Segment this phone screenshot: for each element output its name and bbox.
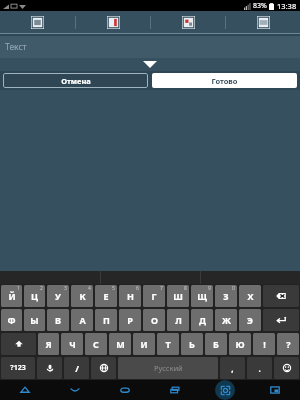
button[interactable]: Full keyboard (226, 11, 300, 33)
staticText: Г (151, 290, 157, 302)
button[interactable]: Split view (76, 11, 150, 33)
button[interactable]: Screenshot (215, 380, 235, 400)
button[interactable]: Emoji (274, 357, 299, 379)
staticText: О (151, 314, 158, 326)
button[interactable]: Б (205, 333, 227, 355)
button[interactable]: Т (157, 333, 179, 355)
button[interactable]: Ь (181, 333, 203, 355)
staticText: Х (247, 290, 254, 302)
button[interactable]: Ы (24, 309, 45, 331)
button[interactable]: Ш (167, 285, 189, 307)
staticText: ?123 (10, 363, 26, 373)
button[interactable]: Г (143, 285, 165, 307)
staticText: Т (165, 338, 171, 350)
staticText: Е (103, 290, 109, 302)
button[interactable]: Ц (24, 285, 45, 307)
staticText: И (140, 338, 148, 350)
button[interactable]: Keyboard layout (0, 11, 75, 33)
staticText: Б (213, 338, 219, 350)
button[interactable]: Й (1, 285, 22, 307)
staticText: 7 (160, 285, 163, 292)
staticText: Ы (30, 314, 39, 326)
button[interactable]: Change language (91, 357, 116, 379)
button[interactable]: / (64, 357, 89, 379)
button[interactable]: ?123 (1, 357, 35, 379)
button[interactable]: Русский (118, 357, 218, 379)
staticText: А (79, 314, 86, 326)
staticText: У (55, 290, 61, 302)
button[interactable]: У (47, 285, 69, 307)
button[interactable]: Х (239, 285, 261, 307)
staticText: Н (127, 290, 134, 302)
button[interactable]: Текст (0, 36, 300, 58)
staticText: Русский (154, 363, 183, 373)
button[interactable]: Л (167, 309, 189, 331)
button[interactable]: Отмена (3, 73, 148, 88)
button[interactable]: Home (100, 380, 150, 400)
button[interactable]: И (133, 333, 155, 355)
staticText: 2 (40, 285, 43, 292)
staticText: Ю (235, 338, 245, 350)
staticText: Отмена (61, 76, 91, 86)
staticText: Д (199, 314, 206, 326)
staticText: В (55, 314, 61, 326)
button[interactable]: М (109, 333, 131, 355)
staticText: 0 (232, 285, 235, 292)
staticText: 13:38 (277, 1, 297, 11)
button[interactable]: Э (239, 309, 261, 331)
button[interactable]: Е (95, 285, 117, 307)
staticText: ? (286, 338, 291, 350)
staticText: Ж (222, 314, 231, 326)
button[interactable]: ! (253, 333, 275, 355)
button[interactable]: Ж (215, 309, 237, 331)
button[interactable]: С (85, 333, 107, 355)
button[interactable]: Ч (61, 333, 83, 355)
staticText: Э (247, 314, 253, 326)
staticText: Текст (5, 41, 27, 53)
button[interactable]: , (220, 357, 245, 379)
button[interactable]: Image input (151, 11, 225, 33)
button[interactable]: Multi window (250, 380, 300, 400)
staticText: / (75, 362, 79, 374)
button[interactable]: Recent apps (150, 380, 200, 400)
button[interactable]: . (247, 357, 272, 379)
staticText: Ь (189, 338, 195, 350)
button[interactable]: О (143, 309, 165, 331)
staticText: 1 (17, 285, 20, 292)
button[interactable]: Voice input (37, 357, 62, 379)
button[interactable]: Back (0, 380, 50, 400)
staticText: К (79, 290, 86, 302)
button[interactable]: Enter (263, 309, 299, 331)
staticText: Ф (7, 314, 16, 326)
staticText: 4 (88, 285, 91, 292)
staticText: Ц (31, 290, 38, 302)
button[interactable]: Ю (229, 333, 251, 355)
button[interactable]: П (95, 309, 117, 331)
staticText: , (231, 363, 234, 374)
button[interactable]: В (47, 309, 69, 331)
staticText: 9 (208, 285, 211, 292)
button[interactable]: Hide keyboard (50, 380, 100, 400)
button[interactable]: Н (119, 285, 141, 307)
staticText: 6 (136, 285, 139, 292)
staticText: . (258, 363, 261, 374)
staticText: 83% (253, 1, 267, 11)
staticText: С (93, 338, 99, 350)
button[interactable]: Backspace (263, 285, 299, 307)
staticText: Л (175, 314, 182, 326)
button[interactable]: А (71, 309, 93, 331)
button[interactable]: Я (38, 333, 59, 355)
button[interactable]: З (215, 285, 237, 307)
button[interactable]: ? (277, 333, 299, 355)
button[interactable]: Д (191, 309, 213, 331)
button[interactable]: Щ (191, 285, 213, 307)
button[interactable]: К (71, 285, 93, 307)
button[interactable]: Shift (1, 333, 36, 355)
button[interactable]: Ф (1, 309, 22, 331)
staticText: М (116, 338, 125, 350)
button[interactable]: Готово (152, 73, 297, 88)
button[interactable]: Р (119, 309, 141, 331)
